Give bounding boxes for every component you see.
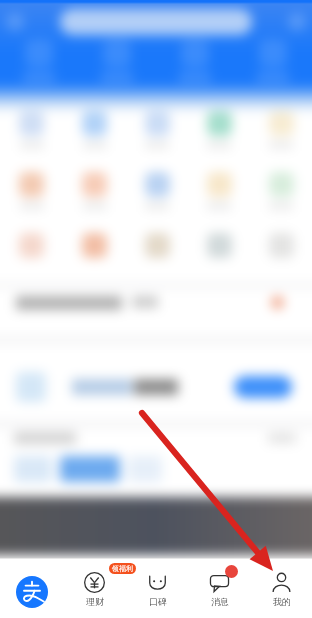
button[interactable]: 口碑 [126,559,188,618]
staticText: 理财 [86,596,104,607]
button[interactable]: 消息 [188,559,250,618]
button[interactable]: 领福利 [63,559,126,618]
staticText: 领福利 [112,564,133,573]
button[interactable]: 支付宝首页 [0,559,63,618]
button[interactable]: 我的 [250,559,312,618]
staticText: 口碑 [149,596,167,607]
staticText: 消息 [211,596,229,607]
staticText: 我的 [273,596,291,607]
